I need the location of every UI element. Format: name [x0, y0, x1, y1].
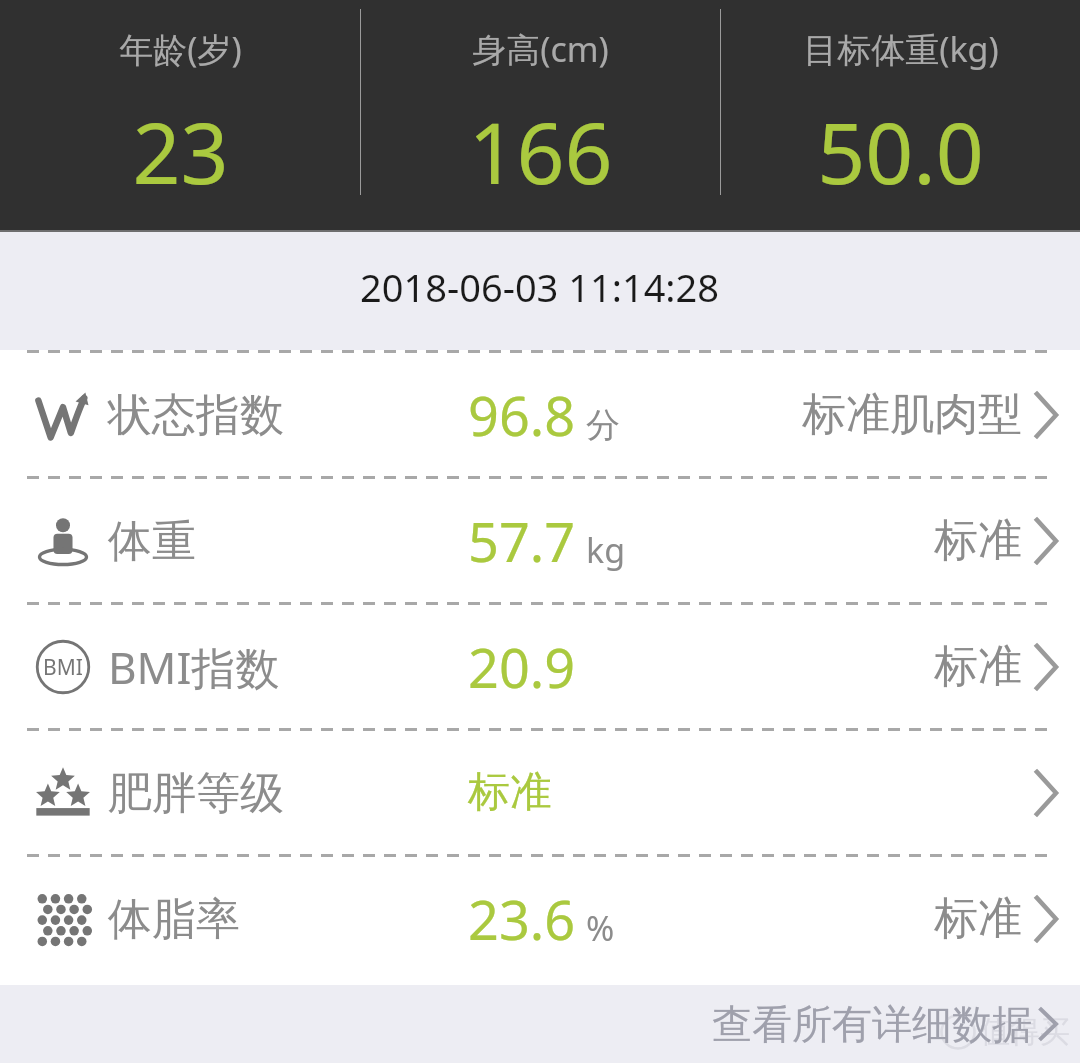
staticText: BMI: [43, 653, 83, 682]
staticText: 年龄(岁): [119, 26, 242, 72]
other: Details: [1034, 769, 1058, 817]
staticText: 标准肌肉型: [802, 387, 1022, 442]
staticText: 肥胖等级: [108, 766, 284, 821]
staticText: 23: [132, 94, 229, 208]
button[interactable]: 查看所有详细数据: [712, 999, 1058, 1049]
staticText: 166: [468, 94, 613, 208]
staticText: 50.0: [817, 94, 984, 208]
other: Details: [1034, 517, 1058, 565]
other: Details: [1034, 643, 1058, 691]
staticText: 20.9: [468, 630, 576, 704]
staticText: BMI指数: [108, 637, 280, 697]
staticText: 96.8: [468, 378, 576, 452]
button[interactable]: 肥胖等级: [0, 731, 1080, 854]
staticText: 标准: [468, 766, 552, 819]
staticText: 值得买: [980, 1013, 1070, 1051]
button[interactable]: BMI: [0, 605, 1080, 728]
staticText: 57.7: [468, 504, 576, 578]
other: Details: [1034, 391, 1058, 439]
other: Details: [1034, 895, 1058, 943]
staticText: kg: [586, 527, 626, 573]
staticText: 标准: [934, 891, 1022, 946]
staticText: 标准: [934, 513, 1022, 568]
staticText: %: [586, 905, 615, 951]
staticText: 标准: [934, 639, 1022, 694]
staticText: 身高(cm): [472, 26, 609, 72]
staticText: 2018-06-03 11:14:28: [360, 261, 720, 313]
staticText: 状态指数: [108, 388, 284, 443]
staticText: 目标体重(kg): [803, 26, 999, 72]
staticText: 体重: [108, 514, 196, 569]
button[interactable]: 状态指数: [0, 353, 1080, 476]
staticText: 查看所有详细数据: [712, 999, 1032, 1049]
button[interactable]: 体重: [0, 479, 1080, 602]
button[interactable]: 体脂率: [0, 857, 1080, 980]
staticText: 23.6: [468, 882, 576, 956]
staticText: 分: [586, 404, 620, 447]
staticText: 体脂率: [108, 892, 240, 947]
